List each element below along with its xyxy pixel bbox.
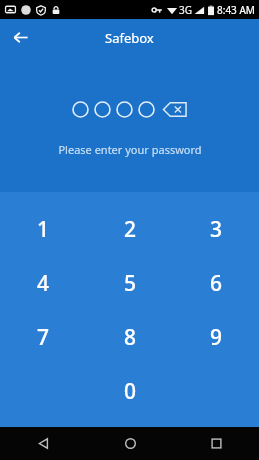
button[interactable]: Home (87, 427, 173, 460)
staticText: 3G (179, 3, 192, 17)
button[interactable]: 1 (0, 202, 87, 256)
staticText: 3 (210, 215, 223, 244)
button[interactable]: Back (0, 427, 87, 460)
staticText: 5 (124, 269, 137, 298)
staticText: 6 (210, 269, 223, 298)
button[interactable]: 4 (0, 256, 87, 310)
button[interactable]: 0 (87, 364, 173, 418)
staticText: Safebox (105, 29, 154, 47)
staticText: Please enter your password (58, 142, 202, 157)
staticText: 9 (210, 323, 223, 352)
button[interactable]: Backspace (163, 101, 187, 118)
button[interactable]: Back (0, 19, 40, 56)
button[interactable]: 9 (173, 310, 259, 364)
staticText: 7 (37, 323, 50, 352)
button[interactable]: 2 (87, 202, 173, 256)
button[interactable]: 7 (0, 310, 87, 364)
staticText: 2 (124, 215, 137, 244)
staticText: 1 (37, 215, 50, 244)
staticText: 0 (124, 377, 137, 406)
staticText: 4 (37, 269, 50, 298)
button[interactable]: 3 (173, 202, 259, 256)
button[interactable]: Recent apps (173, 427, 259, 460)
staticText: 8 (124, 323, 137, 352)
button[interactable]: 8 (87, 310, 173, 364)
staticText: 8:43 AM (217, 3, 255, 17)
button[interactable]: 6 (173, 256, 259, 310)
button[interactable]: 5 (87, 256, 173, 310)
